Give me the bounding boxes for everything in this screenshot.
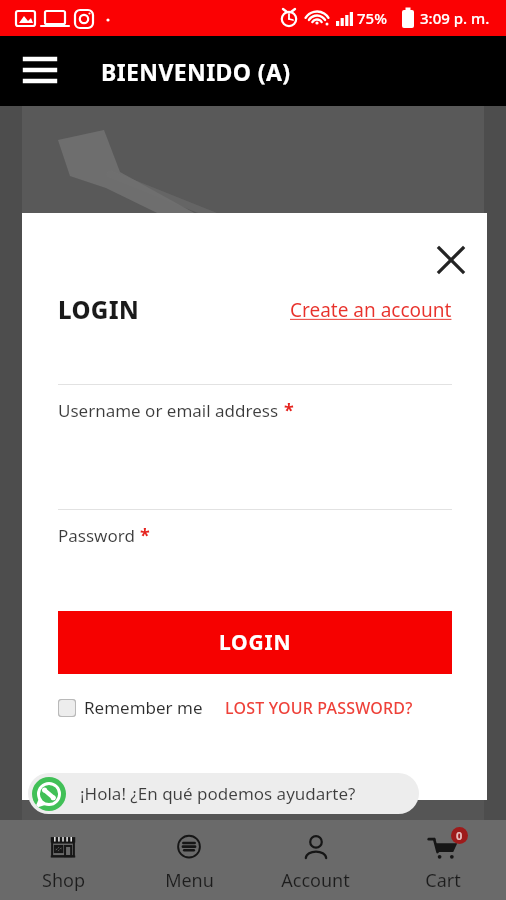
button[interactable]: Remember me [58, 696, 203, 719]
staticText: LOGIN [219, 628, 292, 657]
staticText: 0 [456, 828, 463, 843]
staticText: Menu [165, 868, 214, 893]
staticText: * [140, 523, 150, 548]
button[interactable]: Menu [126, 820, 252, 900]
staticText: 75% [357, 8, 387, 28]
staticText: BIENVENIDO (A) [101, 56, 291, 87]
staticText: LOGIN [58, 293, 139, 326]
staticText: * [284, 398, 294, 423]
staticText: Create an account [290, 297, 452, 323]
button[interactable]: ¡Hola! ¿En qué podemos ayudarte? [28, 773, 419, 814]
staticText: Cart [425, 868, 461, 893]
button[interactable]: Account [252, 820, 379, 900]
staticText: 3:09 p. m. [420, 8, 490, 28]
button[interactable]: LOST YOUR PASSWORD? [225, 697, 413, 719]
staticText: Password [58, 524, 135, 547]
staticText: Username or email address [58, 399, 279, 422]
staticText: LOST YOUR PASSWORD? [225, 697, 413, 719]
staticText: Account [281, 868, 350, 893]
staticText: ¡Hola! ¿En qué podemos ayudarte? [80, 782, 356, 805]
button[interactable]: Open navigation menu [14, 45, 66, 97]
staticText: Shop [42, 868, 85, 893]
button[interactable]: 0 [379, 820, 506, 900]
button[interactable]: Shop [0, 820, 126, 900]
button[interactable]: Close [429, 238, 473, 282]
staticText: Remember me [84, 696, 203, 719]
button[interactable]: Create an account [290, 297, 452, 323]
button[interactable]: LOGIN [58, 611, 452, 674]
